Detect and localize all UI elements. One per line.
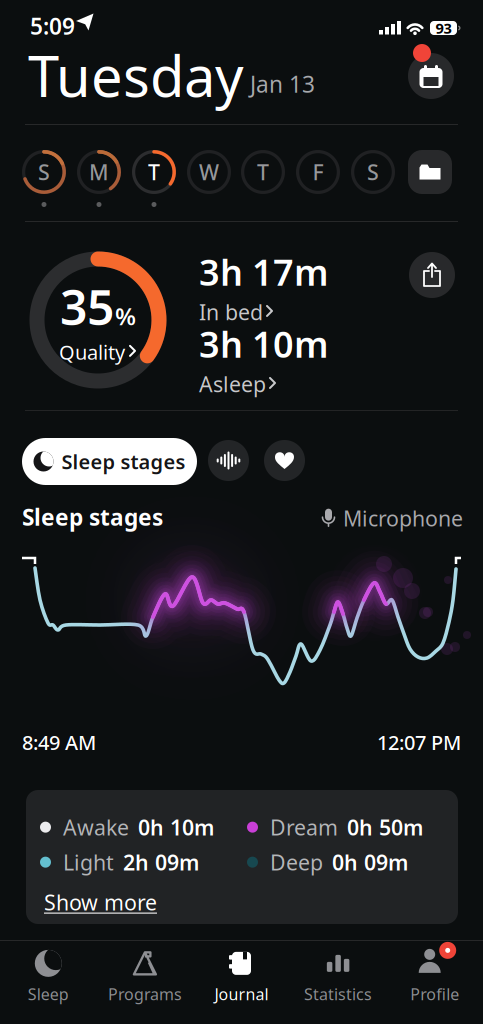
staticText: Sleep xyxy=(28,983,69,1005)
button[interactable]: 35 xyxy=(38,280,158,360)
button[interactable] xyxy=(264,440,305,481)
staticText: Tuesday xyxy=(28,38,244,112)
button[interactable]: M xyxy=(77,150,121,194)
button[interactable]: Profile xyxy=(390,948,480,1006)
button[interactable]: S xyxy=(22,150,66,194)
button[interactable] xyxy=(408,150,452,194)
staticText: S xyxy=(38,158,50,186)
staticText: Show more xyxy=(44,888,157,916)
staticText: Awake xyxy=(63,813,129,841)
staticText: S xyxy=(367,158,379,186)
staticText: M xyxy=(89,158,109,186)
staticText: Sleep stages xyxy=(22,502,163,532)
staticText: 2h 09m xyxy=(123,848,199,876)
staticText: T xyxy=(148,158,160,186)
staticText: Deep xyxy=(270,848,323,876)
button[interactable]: 3h 17m xyxy=(199,248,329,326)
staticText: Dream xyxy=(270,813,338,841)
staticText: Microphone xyxy=(343,504,463,532)
staticText: Light xyxy=(63,848,114,876)
staticText: W xyxy=(199,158,219,186)
button[interactable]: F xyxy=(296,150,340,194)
button[interactable]: T xyxy=(132,150,176,194)
staticText: 3h 17m xyxy=(199,248,329,296)
staticText: 0h 50m xyxy=(347,813,423,841)
staticText: Quality xyxy=(59,339,125,365)
staticText: Sleep stages xyxy=(61,448,185,475)
button[interactable] xyxy=(408,53,454,99)
button[interactable]: Journal xyxy=(196,948,286,1006)
staticText: Profile xyxy=(410,983,459,1005)
button[interactable]: Microphone xyxy=(322,504,463,532)
staticText: Statistics xyxy=(304,983,372,1005)
button[interactable]: Sleep stages xyxy=(22,438,197,485)
button[interactable]: Sleep xyxy=(3,948,93,1006)
staticText: 35 xyxy=(60,275,114,338)
button[interactable] xyxy=(208,440,249,481)
staticText: 0h 09m xyxy=(332,848,408,876)
button[interactable]: Show more xyxy=(44,888,157,916)
staticText: % xyxy=(115,300,136,332)
staticText: F xyxy=(312,158,323,186)
staticText: 3h 10m xyxy=(199,320,329,368)
button[interactable]: Statistics xyxy=(293,948,383,1006)
staticText: Asleep xyxy=(199,370,266,398)
button[interactable] xyxy=(409,252,455,298)
staticText: Programs xyxy=(108,983,182,1005)
button[interactable]: T xyxy=(241,150,285,194)
staticText: 12:07 PM xyxy=(377,729,461,756)
staticText: In bed xyxy=(199,298,263,326)
button[interactable]: S xyxy=(351,150,395,194)
staticText: 0h 10m xyxy=(138,813,214,841)
staticText: 5:09 xyxy=(30,11,75,41)
staticText: Journal xyxy=(214,983,268,1005)
button[interactable]: Programs xyxy=(100,948,190,1006)
staticText: T xyxy=(257,158,269,186)
staticText: 93 xyxy=(435,18,451,38)
button[interactable]: 3h 10m xyxy=(199,320,329,398)
button[interactable]: W xyxy=(187,150,231,194)
staticText: Jan 13 xyxy=(250,69,315,99)
staticText: 8:49 AM xyxy=(22,729,96,756)
